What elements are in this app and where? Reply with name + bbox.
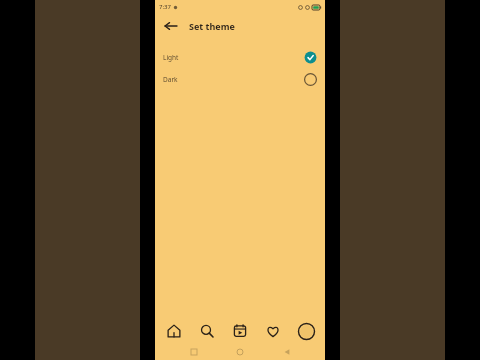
button[interactable]: Search [194, 318, 220, 344]
button[interactable]: Back [161, 16, 181, 36]
staticText: Set theme [189, 20, 235, 32]
button[interactable]: Recents [186, 344, 202, 360]
button[interactable]: Home [161, 318, 187, 344]
button[interactable]: Reels [227, 318, 253, 344]
button[interactable]: Light [155, 46, 325, 68]
button[interactable]: Dark [155, 68, 325, 90]
button[interactable]: Activity [260, 318, 286, 344]
staticText: 7:37 [159, 3, 171, 11]
staticText: Dark [163, 75, 178, 84]
staticText: Light [163, 53, 179, 62]
button[interactable]: Profile [293, 318, 319, 344]
button[interactable]: Home [232, 344, 248, 360]
button[interactable]: Back [279, 344, 295, 360]
